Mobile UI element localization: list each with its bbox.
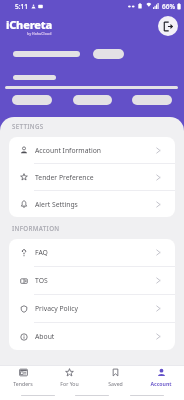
button[interactable]: Alert Settings	[9, 191, 175, 217]
staticText: For You	[60, 380, 79, 387]
staticText: Alert Settings	[35, 200, 78, 209]
button[interactable]: Tenders	[0, 366, 46, 389]
button[interactable]: Account Information	[9, 137, 175, 163]
button[interactable]: About	[9, 323, 175, 350]
button[interactable]: For You	[46, 366, 92, 389]
staticText: About	[35, 332, 55, 341]
button[interactable]: TOS	[9, 267, 175, 294]
staticText: 5:11	[15, 2, 28, 11]
staticText: 66%	[162, 2, 175, 11]
staticText: by HahuCloud	[27, 31, 52, 36]
button[interactable]: FAQ	[9, 239, 175, 266]
button[interactable]: Log out	[158, 16, 178, 36]
staticText: FAQ	[35, 248, 48, 257]
staticText: Account	[150, 380, 172, 387]
button[interactable]: Privacy Policy	[9, 295, 175, 322]
staticText: iChereta	[6, 17, 52, 32]
staticText: Tenders	[13, 380, 33, 387]
staticText: INFORMATION	[12, 224, 60, 232]
staticText: Tender Preference	[35, 173, 94, 182]
button[interactable]: Account	[138, 366, 184, 389]
staticText: Account Information	[35, 146, 102, 155]
staticText: Saved	[108, 380, 123, 387]
button[interactable]: Saved	[92, 366, 138, 389]
staticText: Privacy Policy	[35, 304, 78, 313]
button[interactable]: Tender Preference	[9, 164, 175, 190]
staticText: SETTINGS	[12, 122, 44, 130]
staticText: TOS	[35, 276, 48, 285]
